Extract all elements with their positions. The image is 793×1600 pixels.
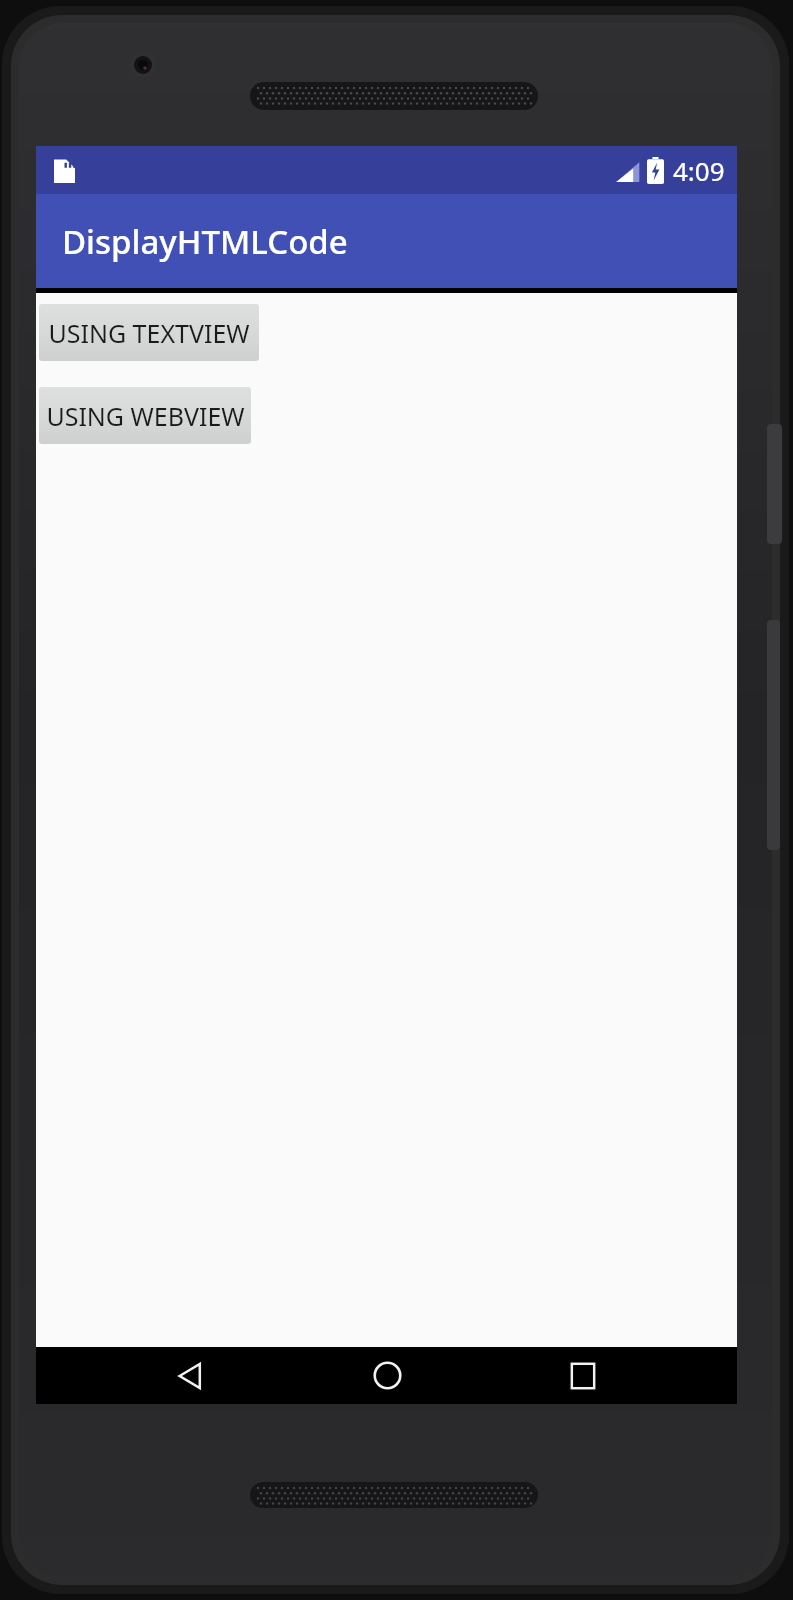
- button[interactable]: USING TEXTVIEW: [39, 304, 259, 361]
- staticText: 4:09: [673, 153, 725, 188]
- staticText: DisplayHTMLCode: [62, 219, 348, 264]
- button[interactable]: Home: [355, 1347, 419, 1404]
- staticText: USING TEXTVIEW: [48, 316, 250, 350]
- button[interactable]: USING WEBVIEW: [39, 387, 251, 444]
- button[interactable]: Back: [158, 1347, 222, 1404]
- button[interactable]: Recent apps: [551, 1347, 615, 1404]
- staticText: USING WEBVIEW: [46, 399, 245, 433]
